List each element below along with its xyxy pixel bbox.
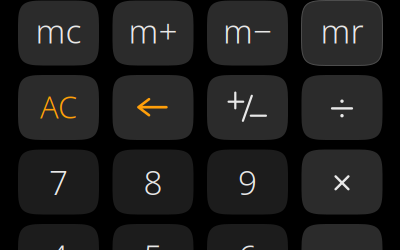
button[interactable]: Plus or minus [0, 0, 400, 250]
button[interactable]: mr [301, 0, 382, 65]
button[interactable]: Backspace [0, 0, 400, 250]
button[interactable]: 8 [112, 149, 193, 214]
button[interactable]: m− [207, 0, 288, 65]
staticText: 9 [238, 160, 257, 204]
button[interactable]: Divide [0, 0, 400, 250]
staticText: 8 [143, 160, 162, 204]
staticText: m− [223, 8, 272, 53]
staticText: m+ [128, 8, 177, 53]
button[interactable]: Subtract [0, 0, 400, 250]
button[interactable]: Multiply [0, 0, 400, 250]
button[interactable]: m+ [112, 0, 193, 65]
staticText: mr [320, 8, 363, 53]
staticText: AC [40, 86, 77, 127]
staticText: 5 [143, 234, 162, 250]
staticText: 4 [49, 234, 68, 250]
button[interactable]: 7 [18, 149, 99, 214]
button[interactable]: 9 [207, 149, 288, 214]
button[interactable]: mc [18, 0, 99, 65]
staticText: 6 [238, 234, 257, 250]
button[interactable]: 4 [18, 224, 99, 250]
button[interactable]: AC [18, 75, 99, 140]
button[interactable]: 6 [207, 224, 288, 250]
staticText: mc [35, 8, 81, 53]
staticText: 7 [49, 160, 68, 204]
button[interactable]: 5 [112, 224, 193, 250]
